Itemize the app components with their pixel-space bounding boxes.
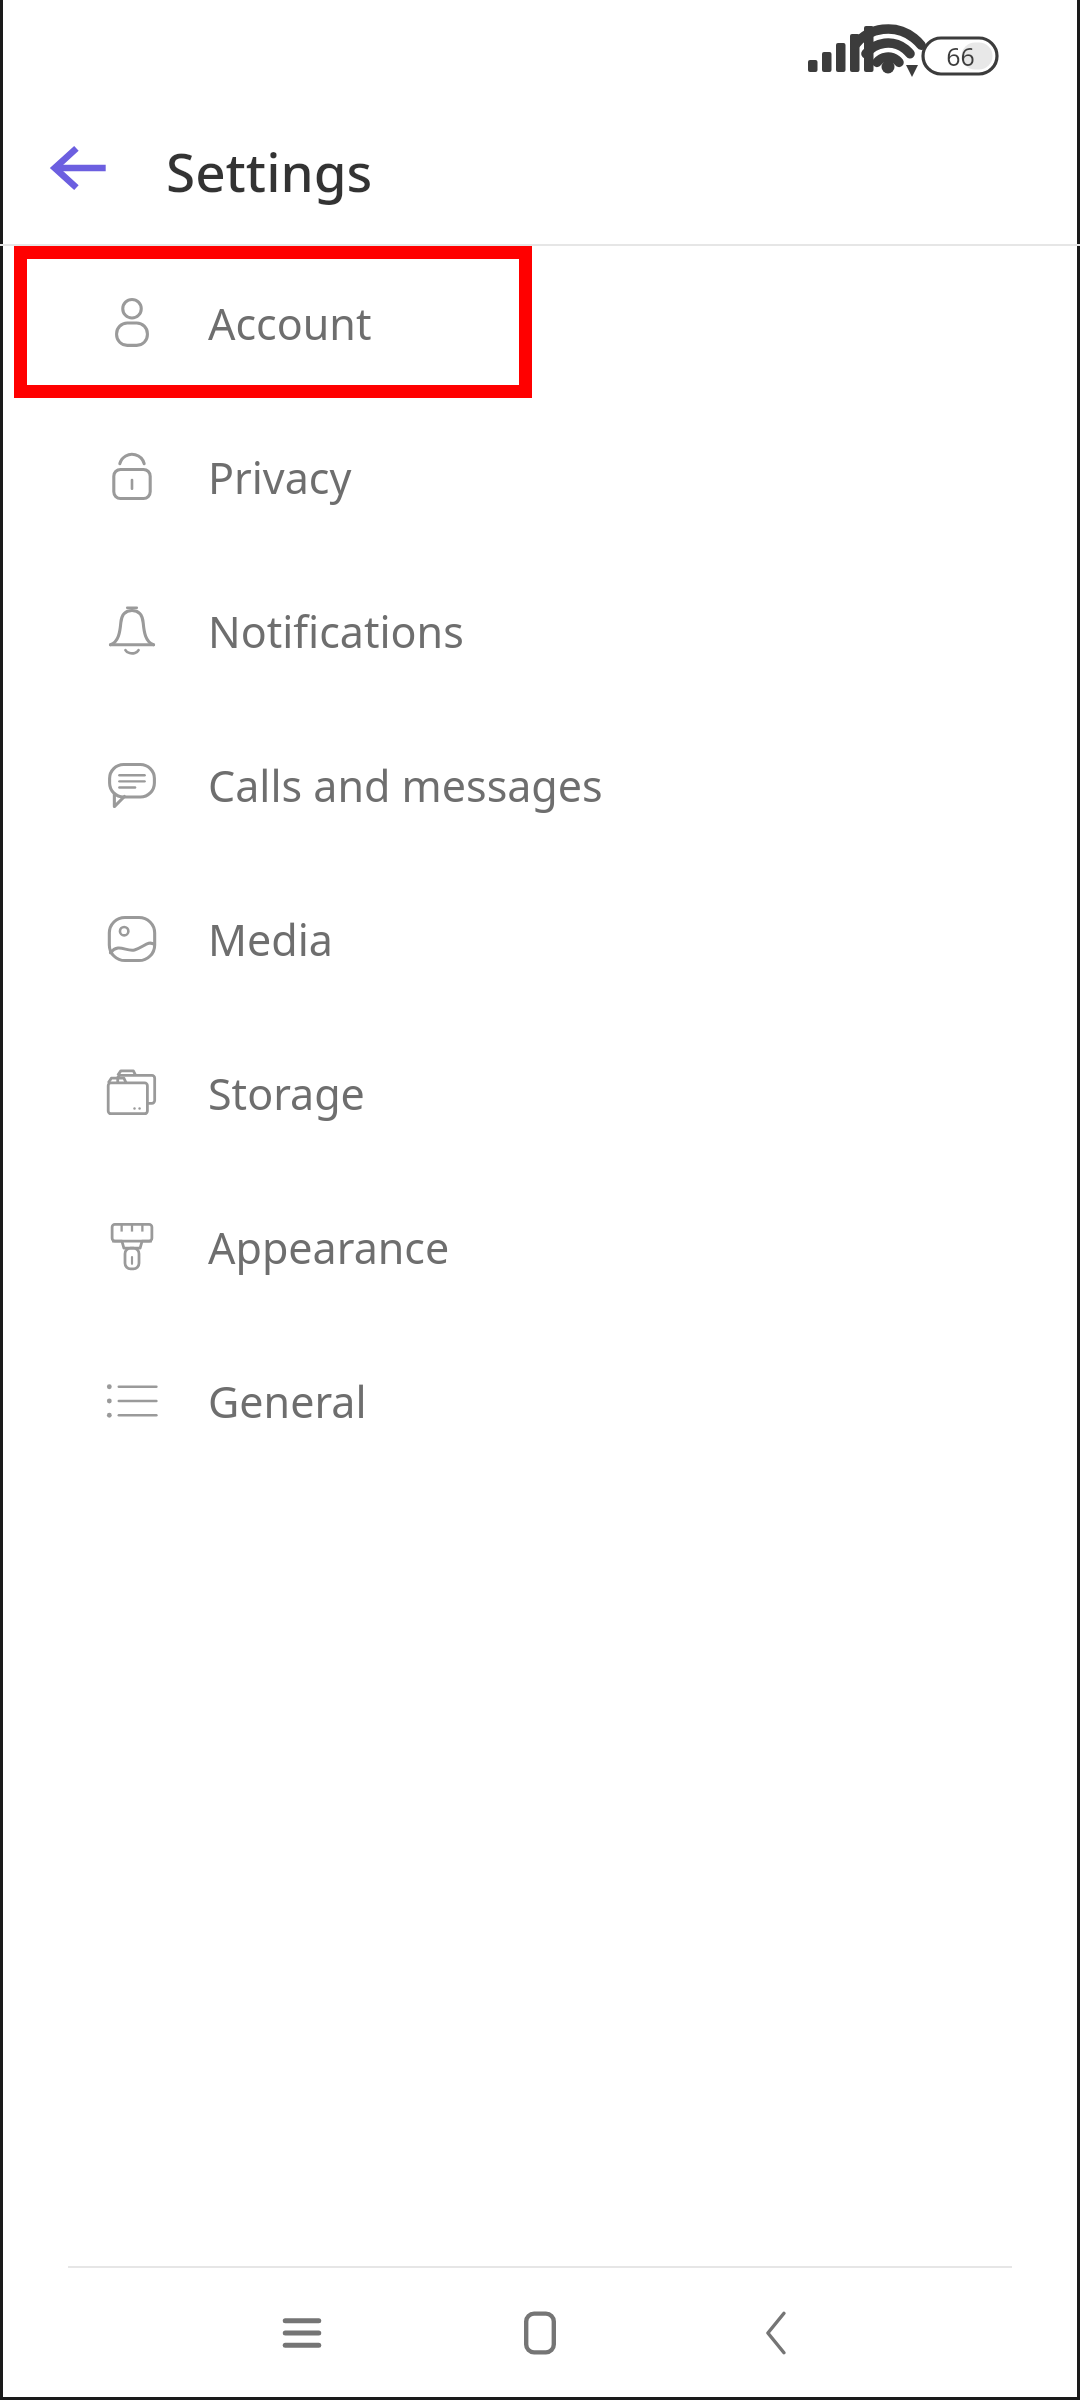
button[interactable]: Storage [0, 1016, 1080, 1170]
button[interactable]: Back [698, 2266, 858, 2400]
staticText: Privacy [208, 448, 352, 507]
staticText: 66 [946, 39, 975, 73]
button[interactable]: Home [460, 2266, 620, 2400]
button[interactable]: Appearance [0, 1170, 1080, 1324]
staticText: Storage [208, 1064, 365, 1123]
button[interactable]: Recent apps [222, 2266, 382, 2400]
button[interactable]: General [0, 1324, 1080, 1478]
button[interactable]: Calls and messages [0, 708, 1080, 862]
button[interactable]: Account [0, 246, 1080, 400]
staticText: Calls and messages [208, 756, 603, 815]
staticText: Account [208, 294, 372, 353]
staticText: General [208, 1372, 367, 1431]
button[interactable]: Back [30, 120, 126, 216]
button[interactable]: Media [0, 862, 1080, 1016]
staticText: Notifications [208, 602, 464, 661]
button[interactable]: Notifications [0, 554, 1080, 708]
staticText: Media [208, 910, 333, 969]
staticText: Settings [166, 135, 373, 207]
staticText: Appearance [208, 1218, 450, 1277]
button[interactable]: Privacy [0, 400, 1080, 554]
